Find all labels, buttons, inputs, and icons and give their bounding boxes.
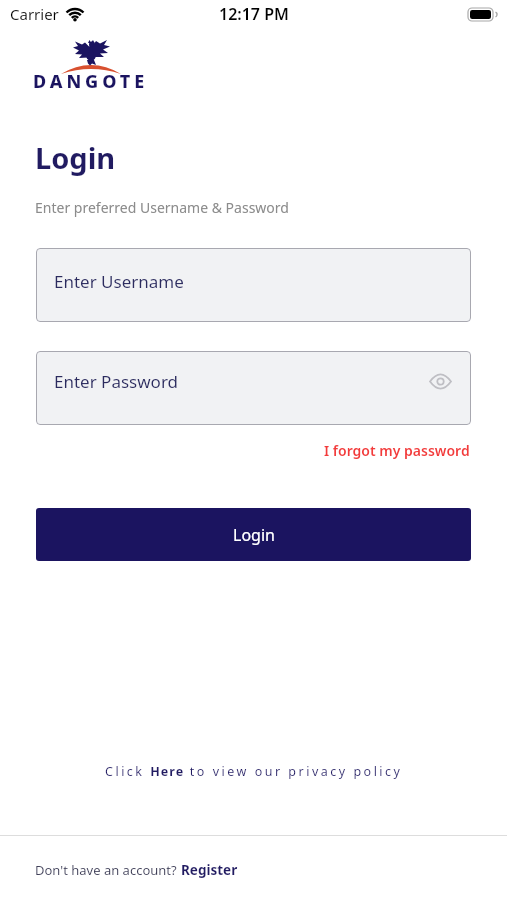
staticText: Login (233, 524, 275, 546)
staticText: Enter Username (54, 270, 184, 293)
button[interactable]: Click Here to view our privacy policy (105, 763, 403, 780)
button[interactable]: I forgot my password (324, 441, 470, 460)
staticText: DANGOTE (33, 69, 149, 94)
button[interactable]: Login (36, 508, 471, 561)
staticText: Enter preferred Username & Password (35, 198, 289, 217)
button[interactable]: Register (181, 861, 238, 879)
staticText: Enter Password (54, 370, 179, 393)
button[interactable]: Enter Password (36, 351, 471, 425)
staticText: Don't have an account? (35, 861, 181, 879)
staticText: Login (35, 138, 116, 177)
staticText: Carrier (10, 4, 59, 24)
staticText: 12:17 PM (219, 3, 289, 25)
button[interactable]: Enter Username (36, 248, 471, 322)
